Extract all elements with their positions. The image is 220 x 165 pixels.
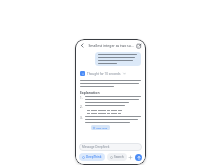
- button[interactable]: Send: [135, 154, 142, 161]
- button[interactable]: [95, 52, 141, 66]
- button[interactable]: Thought for 10 seconds: [80, 70, 126, 77]
- button[interactable]: Back: [79, 42, 86, 49]
- staticText: 2.: [80, 105, 83, 109]
- staticText: 3.: [80, 116, 83, 120]
- button[interactable]: DeepThink: [79, 153, 105, 161]
- button[interactable]: Attach: [127, 154, 133, 160]
- button[interactable]: New chat: [135, 42, 142, 49]
- button[interactable]: Message DeepSeek: [79, 143, 142, 151]
- staticText: Search: [114, 155, 124, 159]
- staticText: 1.: [80, 96, 83, 100]
- staticText: DeepThink: [86, 155, 102, 159]
- staticText: Thought for 10 seconds: [87, 72, 121, 76]
- button[interactable]: View cited: [91, 125, 110, 130]
- staticText: View cited: [96, 126, 108, 129]
- staticText: Explanation: [80, 90, 100, 94]
- staticText: Smallest integer as two su…: [88, 43, 134, 48]
- staticText: Message DeepSeek: [82, 145, 110, 149]
- button[interactable]: Search: [107, 153, 127, 161]
